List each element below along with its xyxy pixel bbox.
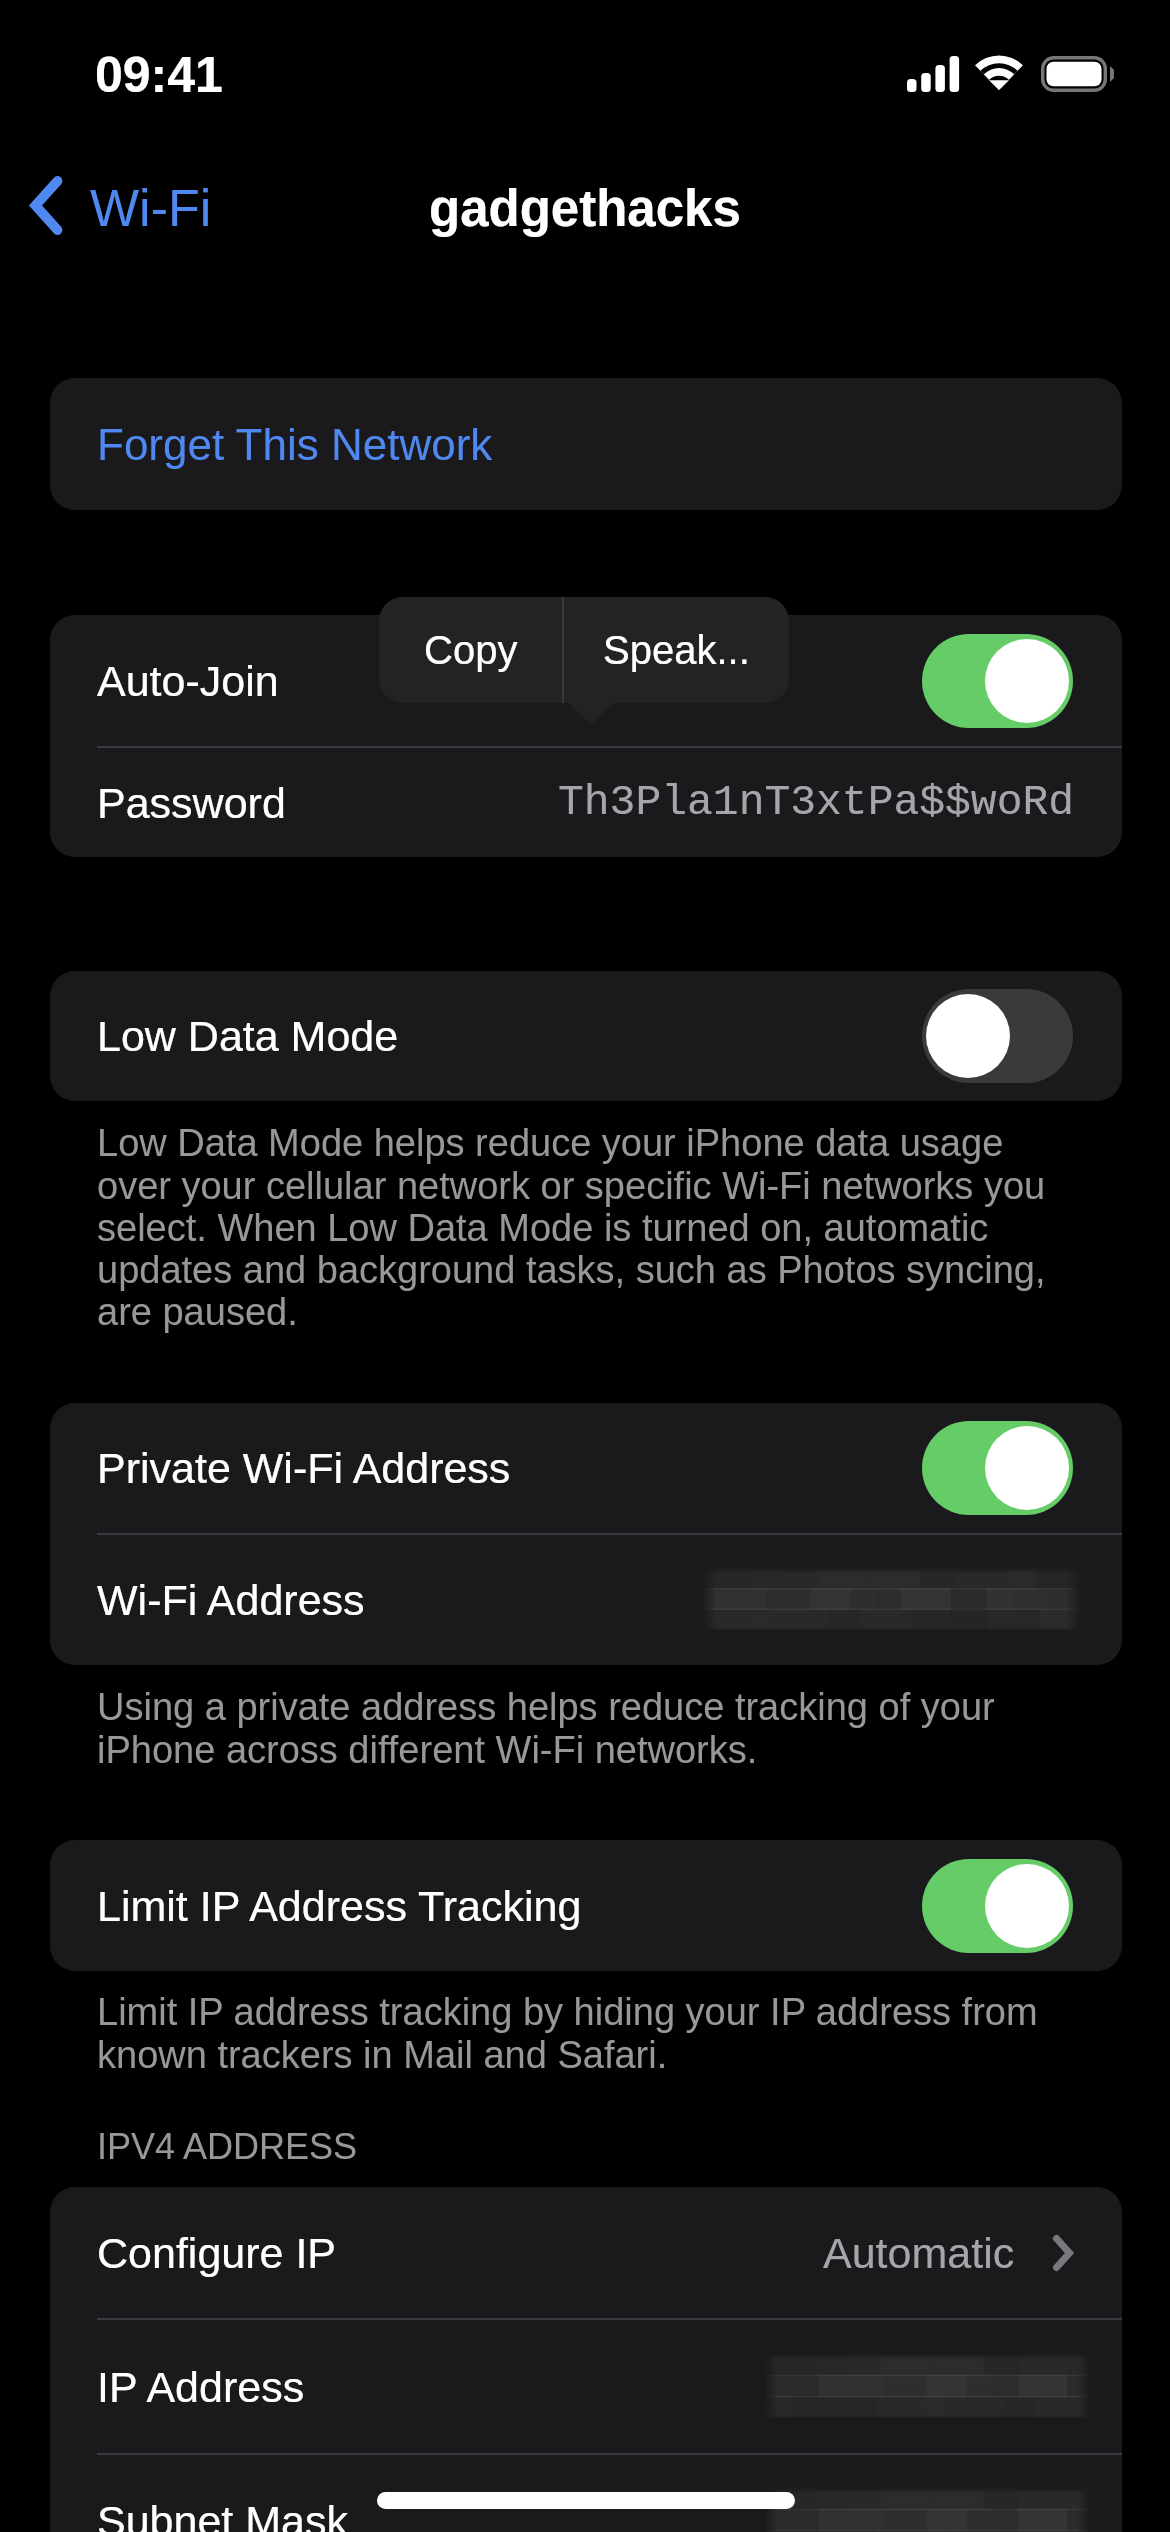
staticText: Wi-Fi Address [97, 1576, 365, 1624]
button[interactable]: Copy [379, 597, 562, 703]
staticText: gadgethacks [429, 180, 741, 237]
button[interactable]: IP Address [50, 2320, 1122, 2453]
staticText: Subnet Mask [97, 2497, 348, 2532]
button[interactable]: Wi-Fi Address [50, 1535, 1122, 1665]
button[interactable]: Limit IP Address Tracking on [922, 1859, 1073, 1953]
button[interactable]: Back to Wi-Fi [15, 167, 224, 244]
staticText: Configure IP [97, 2229, 337, 2277]
staticText: Using a private address helps reduce tra… [97, 1686, 1065, 1771]
staticText: Limit IP address tracking by hiding your… [97, 1991, 1065, 2076]
staticText: Wi-Fi [90, 179, 212, 237]
staticText: Automatic [823, 2229, 1015, 2277]
button[interactable]: Limit IP Address Tracking [50, 1840, 1122, 1971]
button[interactable]: Private Wi-Fi Address [50, 1403, 1122, 1533]
button[interactable]: Subnet Mask [50, 2455, 1122, 2532]
staticText: Speak... [603, 628, 750, 673]
staticText: Forget This Network [97, 420, 493, 469]
staticText: IP Address [97, 2363, 305, 2411]
staticText: Private Wi-Fi Address [97, 1444, 511, 1492]
staticText: Limit IP Address Tracking [97, 1882, 582, 1930]
staticText: Low Data Mode helps reduce your iPhone d… [97, 1122, 1065, 1333]
staticText: IPV4 ADDRESS [97, 2126, 358, 2166]
button[interactable]: Password [50, 748, 1122, 857]
button[interactable]: Auto-Join on [922, 634, 1073, 728]
staticText: Copy [424, 628, 518, 673]
staticText: Low Data Mode [97, 1012, 399, 1060]
staticText: Th3Pla1nT3xtPa$$woRd [558, 778, 1075, 827]
button[interactable]: Low Data Mode off [922, 989, 1073, 1083]
button[interactable]: Private Wi-Fi Address on [922, 1421, 1073, 1515]
button[interactable]: Configure IP [50, 2187, 1122, 2318]
staticText: Auto-Join [97, 657, 279, 705]
button[interactable]: Low Data Mode [50, 971, 1122, 1101]
button[interactable]: Auto-Join [50, 615, 1122, 746]
staticText: Password [97, 779, 286, 827]
staticText: 09:41 [95, 47, 223, 103]
button[interactable]: Forget This Network [50, 378, 1122, 510]
button[interactable]: Speak... [564, 597, 789, 703]
